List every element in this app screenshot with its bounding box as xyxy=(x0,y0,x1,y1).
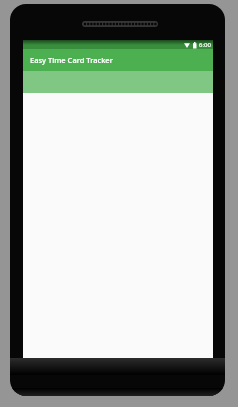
staticText: Easy Time Card Tracker xyxy=(30,55,113,65)
staticText: 6:00 xyxy=(199,41,211,49)
button[interactable]: Easy Time Card Tracker xyxy=(23,49,213,71)
